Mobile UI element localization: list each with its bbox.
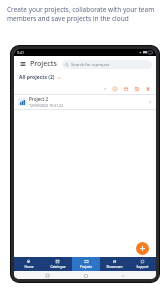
- button[interactable]: Home: [82, 272, 89, 279]
- staticText: Showroom: [106, 265, 123, 269]
- button[interactable]: Support: [128, 257, 156, 271]
- button[interactable]: Project 2: [14, 95, 156, 109]
- staticText: Search for a project: [71, 62, 110, 68]
- button[interactable]: Delete: [144, 85, 152, 93]
- button[interactable]: Back: [119, 272, 126, 279]
- staticText: Create your projects, collaborate with y…: [7, 5, 159, 23]
- button[interactable]: Print: [122, 85, 130, 93]
- button[interactable]: Menu: [18, 59, 28, 69]
- staticText: All projects (2): [19, 74, 55, 81]
- button[interactable]: Search for a project: [62, 60, 152, 69]
- button[interactable]: Share: [111, 85, 119, 93]
- button[interactable]: Catalogue: [43, 257, 72, 271]
- staticText: Projects: [80, 265, 92, 269]
- button[interactable]: Expand: [101, 85, 108, 92]
- staticText: 9:41: [17, 50, 24, 55]
- staticText: Support: [136, 265, 149, 269]
- button[interactable]: Recents: [44, 272, 51, 279]
- button[interactable]: Projects: [72, 257, 100, 271]
- button[interactable]: All projects (2): [19, 74, 61, 81]
- button[interactable]: Home: [14, 257, 43, 271]
- button[interactable]: Add project: [136, 242, 149, 255]
- button[interactable]: Copy: [133, 85, 141, 93]
- staticText: Project 2: [29, 96, 49, 102]
- staticText: Projects: [30, 59, 57, 69]
- staticText: 12/09/2023 10:31:22: [29, 103, 64, 108]
- staticText: Home: [24, 265, 34, 269]
- staticText: Catalogue: [50, 265, 66, 269]
- button[interactable]: Showroom: [100, 257, 128, 271]
